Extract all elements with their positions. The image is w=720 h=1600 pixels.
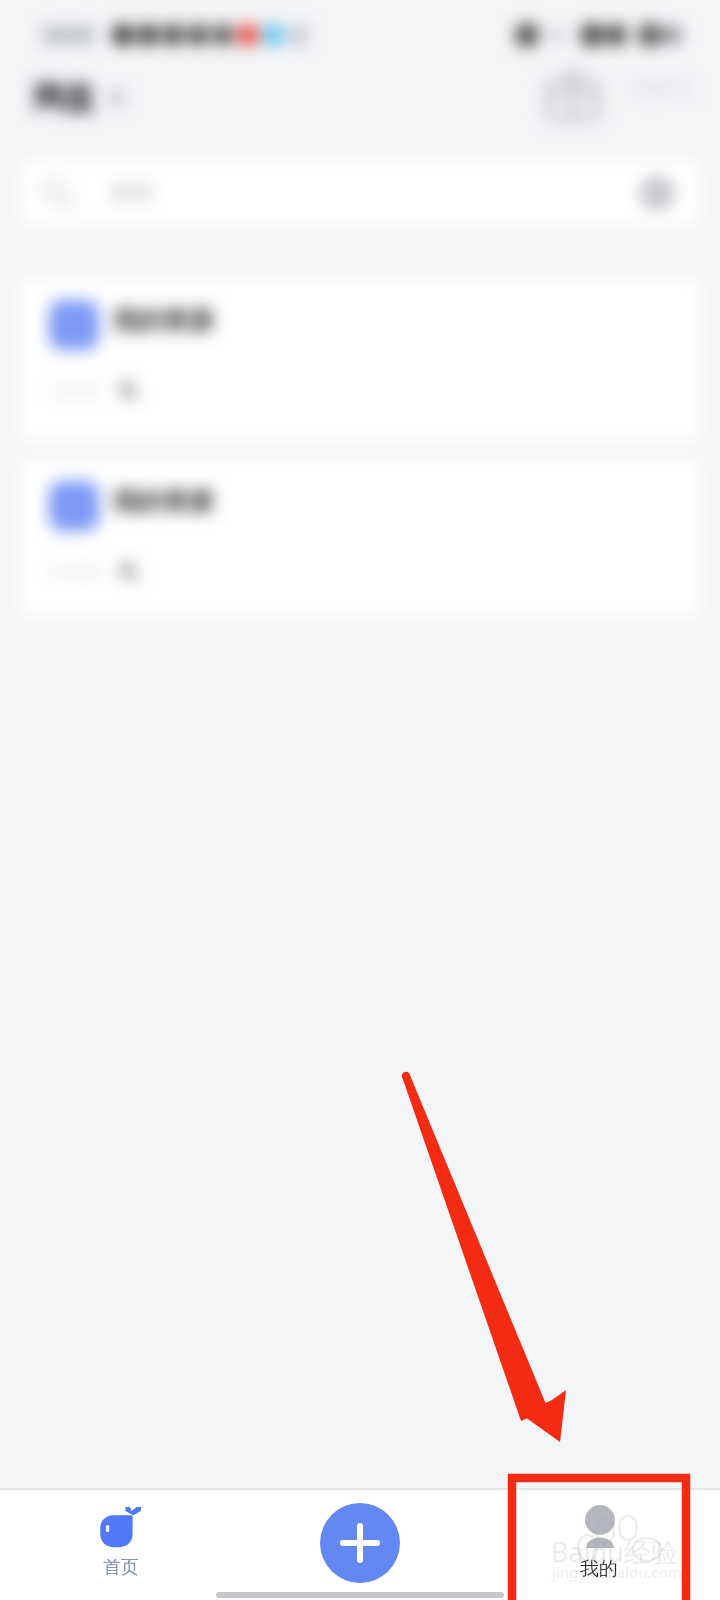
button[interactable]: Add xyxy=(320,1503,400,1583)
staticText: 网盘 xyxy=(33,78,95,117)
staticText: 私 xyxy=(119,377,140,403)
staticText: 我的 xyxy=(580,1557,618,1581)
button[interactable]: Search xyxy=(20,160,700,226)
staticText: jingyan.baidu.com xyxy=(552,1562,682,1582)
button[interactable]: 我的资源 xyxy=(20,278,700,441)
button[interactable]: 我的 xyxy=(480,1489,720,1600)
staticText: 我的资源 xyxy=(113,305,213,336)
staticText: 搜索 xyxy=(110,179,154,207)
button[interactable]: 首页 xyxy=(0,1489,240,1600)
staticText: 首页 xyxy=(103,1556,139,1579)
button[interactable]: Settings xyxy=(637,173,677,213)
staticText: 私 xyxy=(119,558,140,584)
button[interactable]: Gift xyxy=(536,60,610,128)
button[interactable]: 我的资源 xyxy=(20,459,700,616)
staticText: Baidu经验 xyxy=(551,1533,678,1570)
staticText: 我的资源 xyxy=(113,486,213,517)
